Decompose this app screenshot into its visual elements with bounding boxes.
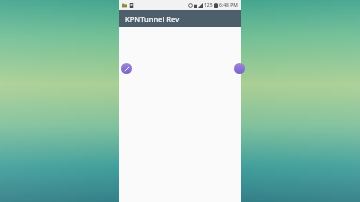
staticText: 6:48 PM: [219, 2, 238, 9]
button[interactable]: KPNTunnel Rev: [119, 10, 241, 27]
button[interactable]: Menu: [234, 63, 245, 74]
staticText: 125: [204, 2, 213, 9]
button[interactable]: Disconnect: [121, 63, 132, 74]
staticText: KPNTunnel Rev: [125, 14, 180, 24]
